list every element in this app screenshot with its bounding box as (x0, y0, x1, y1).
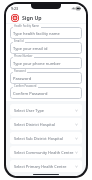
button[interactable]: Type health facility name (10, 24, 82, 39)
staticText: Phone Number (14, 54, 33, 58)
staticText: Type health facility name (13, 31, 60, 36)
staticText: Select Community Health Centre (14, 150, 75, 155)
other: App logo (11, 14, 19, 22)
button[interactable]: Select Sub District Hospital (10, 132, 82, 144)
staticText: Select User Type (14, 108, 75, 113)
staticText: Health Facility Name (14, 24, 40, 28)
button[interactable]: Type your email id (10, 39, 82, 54)
staticText: Type your phone number (13, 61, 61, 66)
staticText: Email id (14, 39, 24, 43)
button[interactable]: Type your phone number (10, 54, 82, 69)
button[interactable]: Password (10, 69, 82, 84)
button[interactable]: Select District Hospital (10, 118, 82, 130)
staticText: Select District Hospital (14, 122, 75, 127)
staticText: Password (13, 76, 32, 81)
staticText: Password (14, 69, 26, 73)
button[interactable]: Confirm Password (10, 84, 82, 99)
button[interactable]: Select Primary Health Centre (10, 160, 82, 172)
button[interactable]: Select Community Health Centre (10, 146, 82, 158)
button[interactable]: Select User Type (10, 104, 82, 116)
staticText: Select Sub District Hospital (14, 136, 75, 141)
staticText: Confirm Password (13, 91, 48, 96)
staticText: Sign Up (22, 14, 42, 21)
staticText: Type your email id (13, 46, 48, 51)
staticText: Confirm Password (14, 84, 37, 88)
staticText: 9:23 (11, 6, 19, 11)
staticText: Select Primary Health Centre (14, 164, 75, 169)
